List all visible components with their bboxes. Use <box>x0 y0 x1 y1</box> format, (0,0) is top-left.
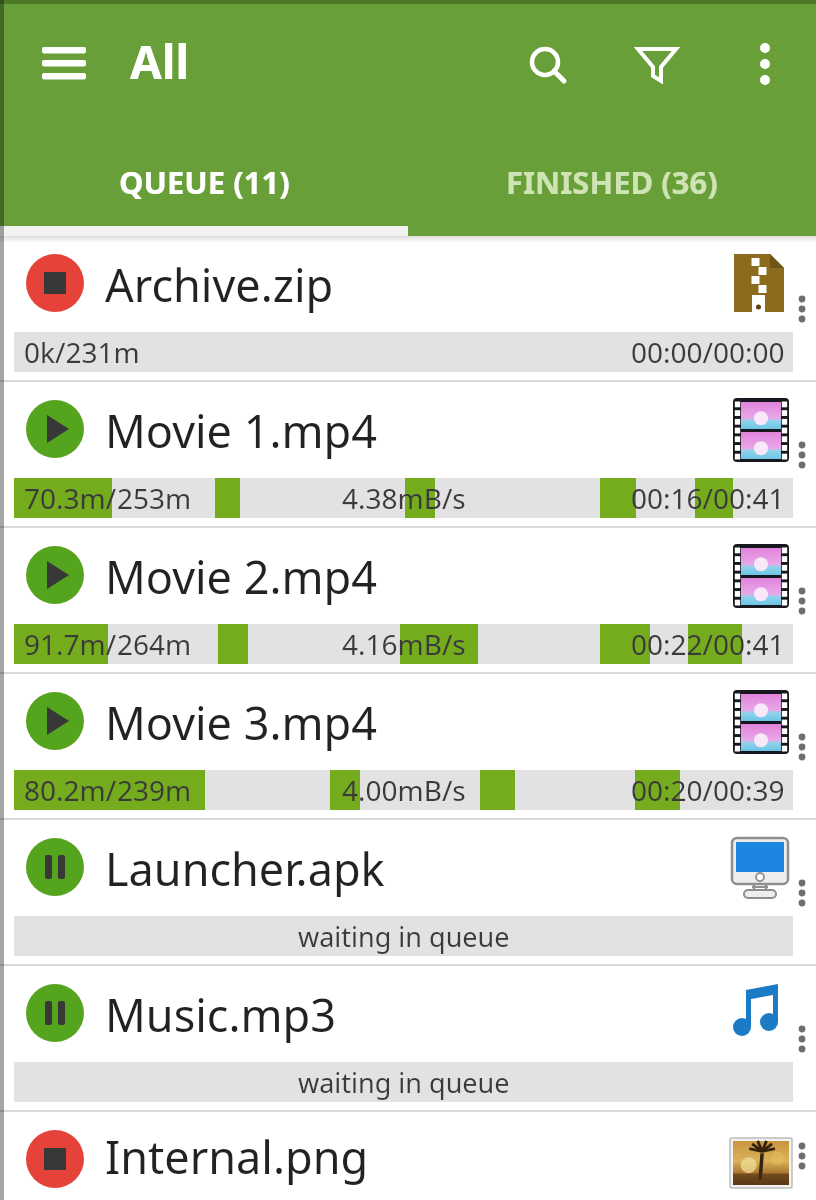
button[interactable] <box>794 966 816 1112</box>
button[interactable]: Movie 1.mp4 <box>0 382 816 528</box>
staticText: All <box>130 30 190 93</box>
button[interactable] <box>794 528 816 674</box>
staticText: 00:20/00:39 <box>631 771 785 809</box>
button[interactable]: Launcher.apk <box>0 820 816 966</box>
button[interactable]: Music.mp3 <box>0 966 816 1112</box>
staticText: 00:00/00:00 <box>631 333 785 371</box>
button[interactable] <box>736 37 794 95</box>
staticText: Movie 2.mp4 <box>105 546 377 607</box>
staticText: Movie 3.mp4 <box>105 692 377 753</box>
button[interactable] <box>794 674 816 820</box>
staticText: waiting in queue <box>298 918 510 955</box>
staticText: 70.3m/ <box>24 479 117 517</box>
staticText: Music.mp3 <box>105 984 336 1045</box>
staticText: 0k/231m <box>24 333 140 371</box>
staticText: FINISHED (36) <box>506 161 718 203</box>
staticText: 4.00mB/s <box>342 771 466 809</box>
button[interactable] <box>628 37 686 95</box>
button[interactable] <box>794 1112 816 1200</box>
staticText: Launcher.apk <box>105 838 385 899</box>
staticText: Archive.zip <box>105 254 334 315</box>
staticText: Movie 1.mp4 <box>105 400 377 461</box>
button[interactable] <box>519 37 577 95</box>
staticText: 00:16/00:41 <box>631 479 785 517</box>
staticText: 00:22/00:41 <box>631 625 785 663</box>
button[interactable]: Movie 2.mp4 <box>0 528 816 674</box>
staticText: 4.16mB/s <box>342 625 466 663</box>
button[interactable]: Archive.zip <box>0 236 816 382</box>
button[interactable]: Movie 3.mp4 <box>0 674 816 820</box>
staticText: 253m <box>117 479 192 517</box>
staticText: Internal.png <box>105 1126 369 1187</box>
button[interactable] <box>794 820 816 966</box>
button[interactable] <box>34 34 94 94</box>
button[interactable]: QUEUE (11) <box>0 134 408 230</box>
staticText: QUEUE (11) <box>119 161 290 203</box>
button[interactable] <box>794 236 816 382</box>
staticText: 264m <box>117 625 192 663</box>
staticText: 4.38mB/s <box>342 479 466 517</box>
button[interactable] <box>794 382 816 528</box>
staticText: 80.2m/ <box>24 771 117 809</box>
staticText: 239m <box>117 771 192 809</box>
button[interactable]: FINISHED (36) <box>408 134 816 230</box>
staticText: 91.7m/ <box>24 625 117 663</box>
staticText: waiting in queue <box>298 1064 510 1101</box>
button[interactable]: Internal.png <box>0 1112 816 1200</box>
